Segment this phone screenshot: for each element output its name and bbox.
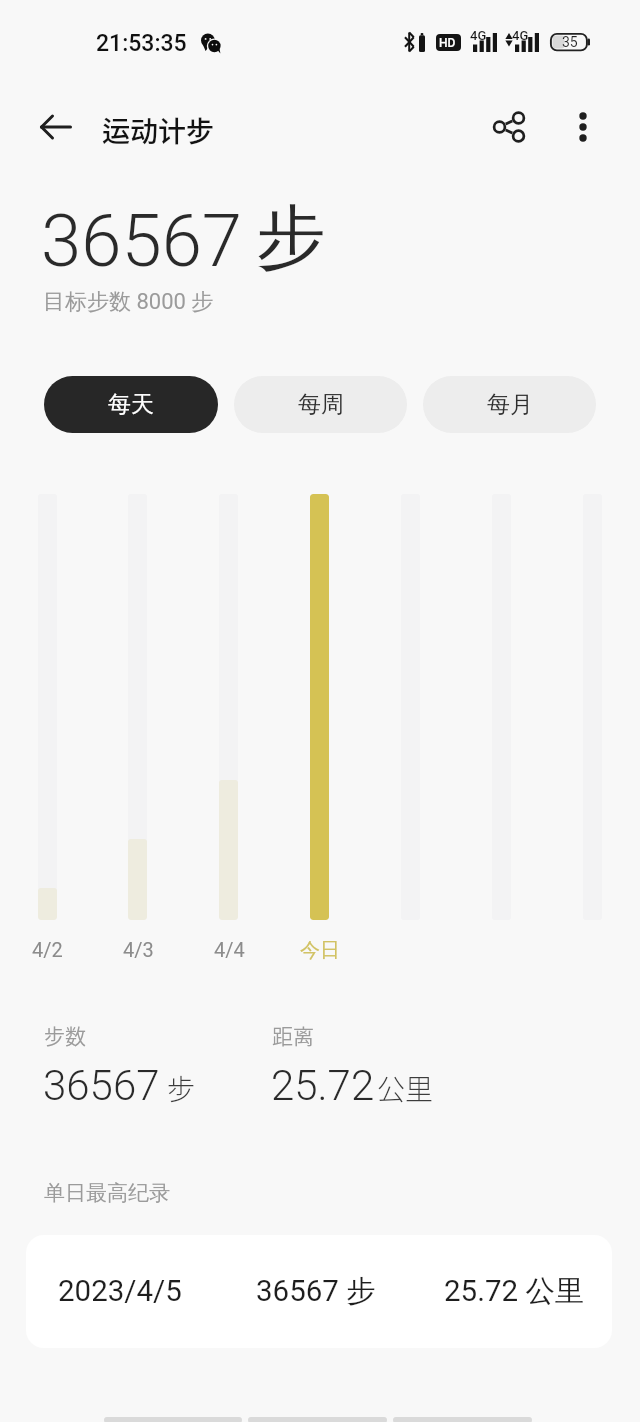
staticText: 每月 xyxy=(487,390,533,419)
staticText: 4/2 xyxy=(32,938,63,961)
staticText: 36567 步 xyxy=(256,1273,376,1310)
staticText: 36567 xyxy=(41,199,243,284)
button[interactable]: More options xyxy=(559,103,607,151)
button[interactable]: Back xyxy=(32,103,80,151)
staticText: 4G xyxy=(512,28,529,43)
staticText: 25.72 xyxy=(271,1061,375,1110)
staticText: 35 xyxy=(562,34,578,50)
button[interactable]: 每周 xyxy=(234,376,407,433)
button[interactable]: 每月 xyxy=(423,376,596,433)
staticText: 4/4 xyxy=(214,938,245,961)
staticText: 步 xyxy=(167,1068,196,1109)
staticText: 步 xyxy=(256,194,326,282)
staticText: 步数 xyxy=(44,1020,86,1050)
staticText: 36567 xyxy=(43,1061,160,1110)
button[interactable]: 2023/4/5 xyxy=(26,1235,612,1348)
button[interactable]: Share xyxy=(485,103,533,151)
button[interactable]: 每天 xyxy=(44,376,218,433)
staticText: HD xyxy=(439,36,456,50)
staticText: 25.72 公里 xyxy=(444,1273,585,1310)
staticText: 每天 xyxy=(108,390,154,419)
staticText: 单日最高纪录 xyxy=(44,1180,170,1206)
staticText: 4G xyxy=(470,28,487,43)
staticText: 目标步数 8000 步 xyxy=(43,288,214,316)
staticText: 21:53:35 xyxy=(96,30,187,57)
staticText: 4/3 xyxy=(123,938,154,961)
staticText: 公里 xyxy=(377,1068,434,1109)
staticText: 距离 xyxy=(272,1020,314,1050)
staticText: 运动计步 xyxy=(102,110,215,151)
staticText: 今日 xyxy=(300,938,340,963)
staticText: 2023/4/5 xyxy=(58,1274,182,1309)
staticText: 每周 xyxy=(298,390,344,419)
